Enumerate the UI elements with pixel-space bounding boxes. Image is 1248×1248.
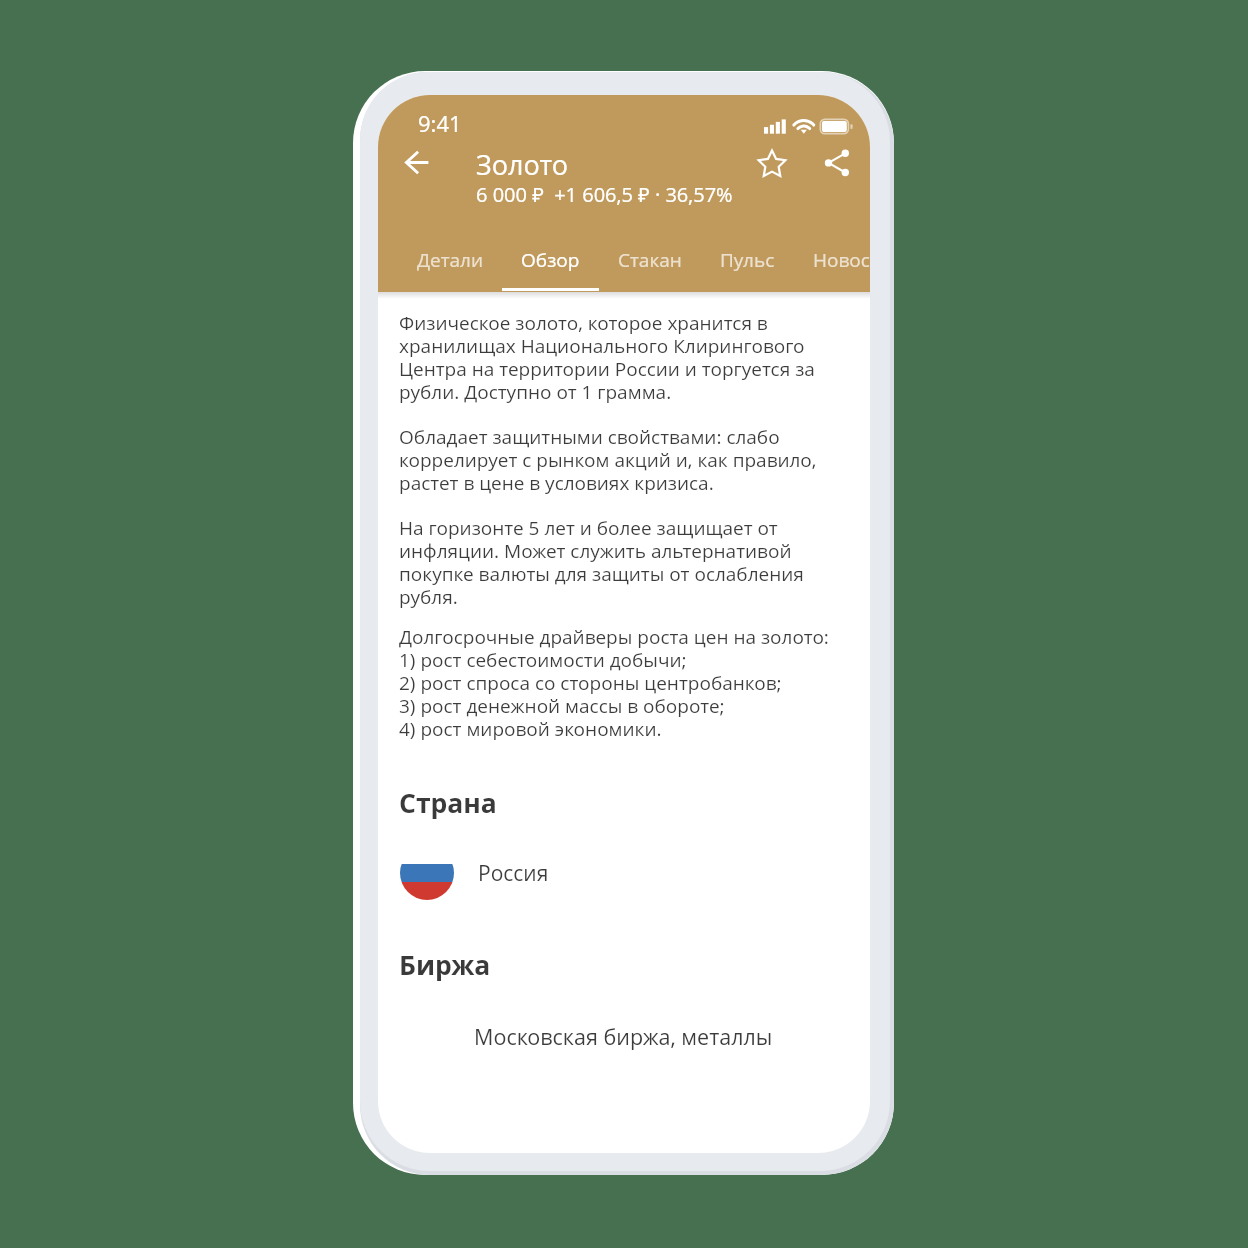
- staticText: Пульс: [720, 247, 775, 273]
- staticText: 6 000 ₽ +1 606,5 ₽ · 36,57%: [476, 181, 733, 208]
- button[interactable]: Share: [812, 138, 862, 188]
- staticText: 9:41: [418, 108, 462, 138]
- staticText: Долгосрочные драйверы роста цен на золот…: [399, 626, 836, 741]
- staticText: Новости: [813, 247, 870, 273]
- button[interactable]: Новости: [794, 240, 870, 291]
- button[interactable]: Обзор: [502, 240, 599, 291]
- staticText: Детали: [417, 247, 483, 273]
- staticText: Биржа: [399, 947, 491, 983]
- button[interactable]: Пульс: [701, 240, 794, 291]
- button[interactable]: Детали: [398, 240, 502, 291]
- button[interactable]: Стакан: [599, 240, 701, 291]
- staticText: Обладает защитными свойствами: слабо кор…: [399, 426, 836, 495]
- staticText: Обзор: [521, 247, 580, 273]
- button[interactable]: Back: [390, 139, 440, 189]
- staticText: Страна: [399, 785, 497, 821]
- staticText: Россия: [478, 859, 549, 888]
- staticText: Стакан: [618, 247, 682, 273]
- button[interactable]: Add to favorites: [746, 138, 796, 188]
- staticText: Физическое золото, которое хранится в хр…: [399, 312, 836, 404]
- staticText: Московская биржа, металлы: [474, 1022, 773, 1051]
- staticText: Золото: [476, 146, 569, 183]
- staticText: На горизонте 5 лет и более защищает от и…: [399, 517, 836, 609]
